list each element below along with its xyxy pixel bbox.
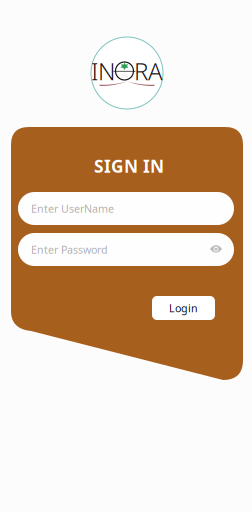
staticText: Login — [169, 301, 198, 315]
button[interactable]: Enter Password — [18, 233, 234, 266]
staticText: Enter Password — [31, 242, 108, 257]
staticText: SIGN IN — [94, 154, 164, 177]
button[interactable]: Show password — [205, 238, 227, 260]
button[interactable]: Login — [152, 296, 215, 320]
staticText: IN — [91, 55, 115, 87]
button[interactable]: Enter UserName — [18, 192, 234, 225]
staticText: RA — [134, 55, 163, 87]
staticText: Enter UserName — [31, 201, 114, 216]
